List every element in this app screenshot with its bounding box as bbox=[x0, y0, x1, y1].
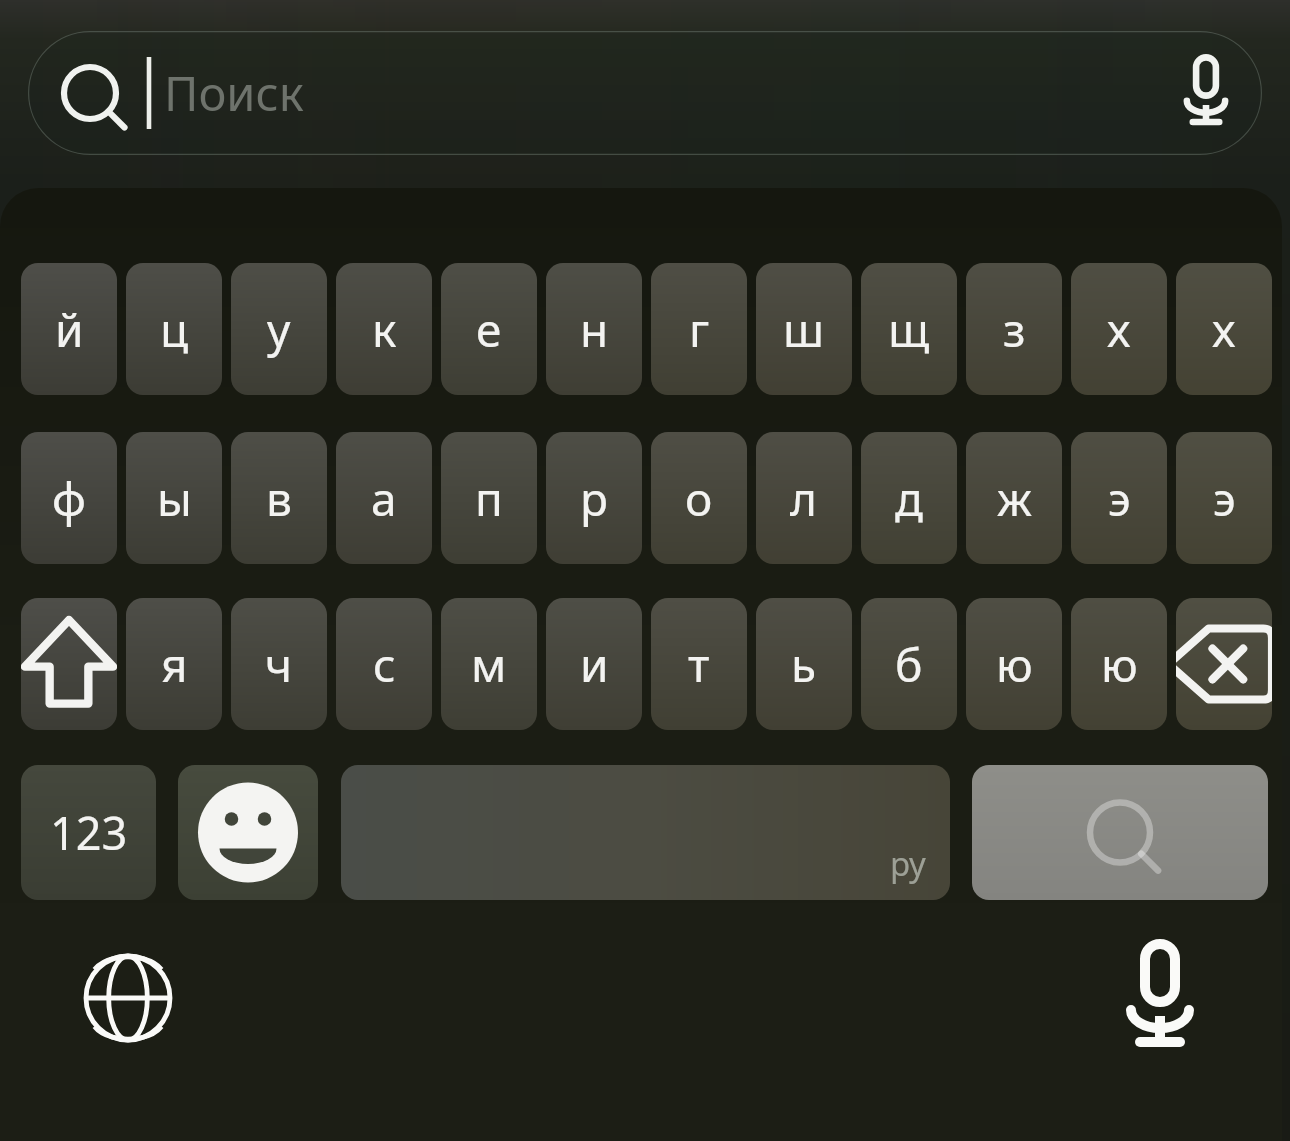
button[interactable]: ю bbox=[1071, 598, 1167, 730]
staticText: о bbox=[685, 467, 713, 530]
staticText: ь bbox=[791, 633, 817, 696]
staticText: р bbox=[580, 467, 608, 530]
staticText: к bbox=[372, 298, 397, 361]
button[interactable]: Поиск bbox=[28, 31, 1262, 155]
button[interactable]: Space bbox=[341, 765, 950, 900]
staticText: м bbox=[471, 633, 507, 696]
staticText: я bbox=[161, 633, 188, 696]
button[interactable]: м bbox=[441, 598, 537, 730]
button[interactable]: Shift bbox=[21, 598, 117, 730]
button[interactable]: Change language bbox=[78, 948, 178, 1048]
button[interactable]: й bbox=[21, 263, 117, 395]
staticText: х bbox=[1107, 298, 1131, 361]
staticText: ру bbox=[890, 841, 926, 886]
staticText: е bbox=[476, 298, 502, 361]
staticText: н bbox=[580, 298, 609, 361]
button[interactable]: п bbox=[441, 432, 537, 564]
button[interactable]: и bbox=[546, 598, 642, 730]
button[interactable]: ж bbox=[966, 432, 1062, 564]
staticText: ы bbox=[157, 467, 192, 530]
button[interactable]: н bbox=[546, 263, 642, 395]
button[interactable]: ф bbox=[21, 432, 117, 564]
button[interactable]: р bbox=[546, 432, 642, 564]
staticText: х bbox=[1212, 298, 1236, 361]
staticText: Поиск bbox=[164, 61, 304, 125]
staticText: т bbox=[688, 633, 710, 696]
staticText: б bbox=[895, 633, 923, 696]
button[interactable]: Voice input bbox=[1110, 948, 1210, 1048]
button[interactable]: ч bbox=[231, 598, 327, 730]
button[interactable]: а bbox=[336, 432, 432, 564]
button[interactable]: о bbox=[651, 432, 747, 564]
staticText: 123 bbox=[50, 802, 128, 863]
button[interactable]: э bbox=[1176, 432, 1272, 564]
staticText: у bbox=[267, 298, 291, 361]
staticText: с bbox=[373, 633, 396, 696]
staticText: г bbox=[689, 298, 710, 361]
button[interactable]: ь bbox=[756, 598, 852, 730]
button[interactable]: ш bbox=[756, 263, 852, 395]
button[interactable]: ы bbox=[126, 432, 222, 564]
staticText: щ bbox=[888, 298, 930, 361]
button[interactable]: 123 bbox=[21, 765, 156, 900]
staticText: ш bbox=[783, 298, 825, 361]
button[interactable]: б bbox=[861, 598, 957, 730]
staticText: а bbox=[371, 467, 397, 530]
staticText: й bbox=[55, 298, 84, 361]
button[interactable]: т bbox=[651, 598, 747, 730]
staticText: э bbox=[1108, 467, 1131, 530]
button[interactable]: д bbox=[861, 432, 957, 564]
staticText: ф bbox=[52, 467, 86, 530]
staticText: п bbox=[475, 467, 503, 530]
button[interactable]: Search bbox=[972, 765, 1268, 900]
staticText: ю bbox=[996, 633, 1033, 696]
button[interactable]: я bbox=[126, 598, 222, 730]
button[interactable]: ц bbox=[126, 263, 222, 395]
staticText: з bbox=[1003, 298, 1026, 361]
staticText: ч bbox=[265, 633, 293, 696]
staticText: д bbox=[895, 467, 923, 530]
staticText: э bbox=[1213, 467, 1236, 530]
button[interactable]: Backspace bbox=[1176, 598, 1272, 730]
button[interactable]: к bbox=[336, 263, 432, 395]
button[interactable]: ю bbox=[966, 598, 1062, 730]
button[interactable]: з bbox=[966, 263, 1062, 395]
button[interactable]: с bbox=[336, 598, 432, 730]
button[interactable]: х bbox=[1176, 263, 1272, 395]
button[interactable]: э bbox=[1071, 432, 1167, 564]
button[interactable]: х bbox=[1071, 263, 1167, 395]
button[interactable]: Emoji bbox=[178, 765, 318, 900]
staticText: ю bbox=[1101, 633, 1138, 696]
button[interactable]: у bbox=[231, 263, 327, 395]
staticText: в bbox=[266, 467, 292, 530]
staticText: ц bbox=[160, 298, 189, 361]
staticText: л bbox=[790, 467, 818, 530]
button[interactable]: е bbox=[441, 263, 537, 395]
button[interactable]: г bbox=[651, 263, 747, 395]
staticText: ж bbox=[997, 467, 1032, 530]
button[interactable]: л bbox=[756, 432, 852, 564]
button[interactable]: в bbox=[231, 432, 327, 564]
button[interactable]: щ bbox=[861, 263, 957, 395]
staticText: и bbox=[580, 633, 609, 696]
